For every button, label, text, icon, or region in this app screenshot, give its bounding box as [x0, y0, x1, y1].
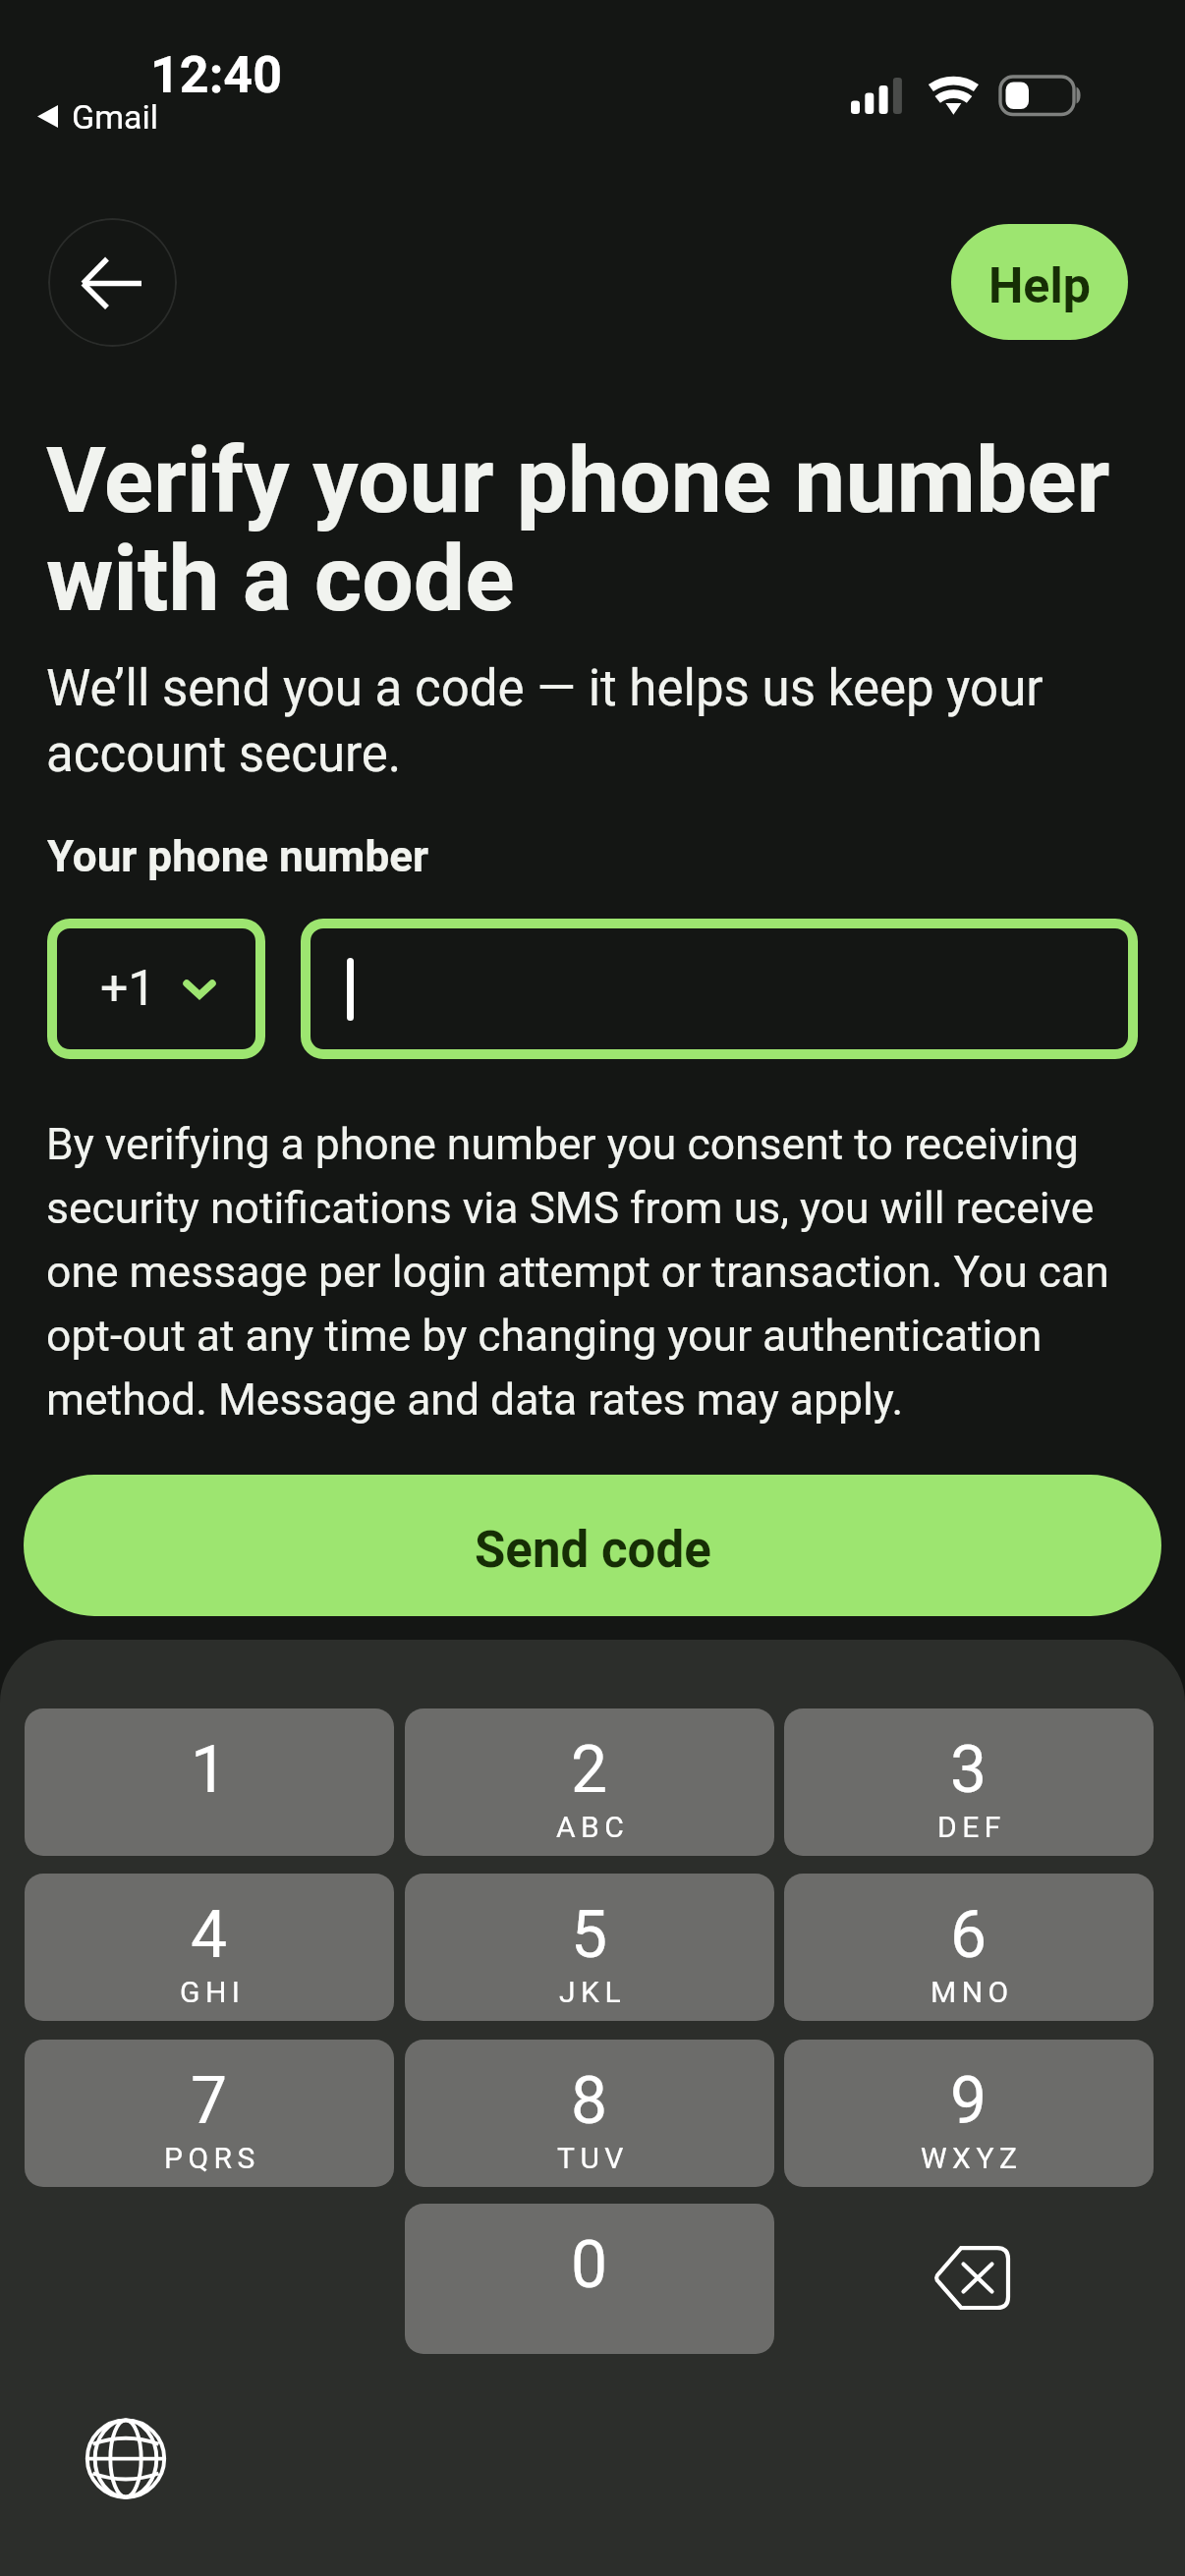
staticText: +1 [100, 960, 156, 1018]
staticText: DEF [937, 1810, 1006, 1844]
button[interactable]: 5 [405, 1874, 774, 2021]
staticText: We’ll send you a code — it helps us keep… [46, 653, 1048, 785]
staticText: WXYZ [921, 2141, 1023, 2175]
staticText: 6 [950, 1897, 987, 1973]
button[interactable]: Back [48, 218, 177, 347]
button[interactable]: Backspace [784, 2204, 1154, 2354]
staticText: 9 [950, 2063, 987, 2139]
staticText: GHI [180, 1975, 246, 2009]
staticText: JKL [559, 1975, 627, 2009]
button[interactable]: Send code [24, 1475, 1161, 1616]
staticText: MNO [931, 1975, 1014, 2009]
button[interactable]: 2 [405, 1708, 774, 1856]
button[interactable] [301, 919, 1138, 1059]
staticText: By verifying a phone number you consent … [46, 1109, 1109, 1428]
staticText: 1 [191, 1732, 228, 1808]
staticText: Send code [475, 1521, 711, 1580]
staticText: 7 [191, 2063, 228, 2139]
button[interactable]: 3 [784, 1708, 1154, 1856]
button[interactable]: 4 [25, 1874, 394, 2021]
button[interactable]: 9 [784, 2040, 1154, 2187]
button[interactable]: 8 [405, 2040, 774, 2187]
staticText: 3 [950, 1732, 987, 1808]
staticText: 4 [191, 1897, 228, 1973]
staticText: ABC [556, 1810, 630, 1844]
button[interactable]: 1 [25, 1708, 394, 1856]
button[interactable]: 6 [784, 1874, 1154, 2021]
staticText: Help [988, 257, 1091, 315]
staticText: 8 [571, 2063, 608, 2139]
button[interactable]: Change keyboard language [59, 2391, 193, 2525]
staticText: 0 [571, 2227, 608, 2303]
staticText: Gmail [72, 97, 159, 137]
button[interactable]: 7 [25, 2040, 394, 2187]
staticText: TUV [557, 2141, 629, 2175]
button[interactable]: 0 [405, 2204, 774, 2354]
staticText: Your phone number [47, 831, 429, 882]
staticText: 12:40 [150, 45, 283, 105]
staticText: 5 [571, 1897, 608, 1973]
button[interactable]: +1 [47, 919, 265, 1059]
staticText: Verify your phone number with a code [46, 434, 1137, 631]
button[interactable]: Help [951, 224, 1128, 340]
staticText: 2 [571, 1732, 608, 1808]
staticText: PQRS [164, 2141, 260, 2175]
